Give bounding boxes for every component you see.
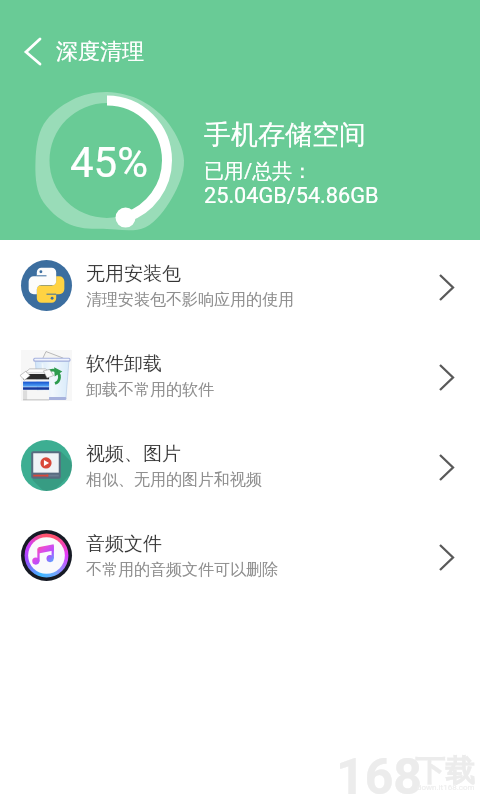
staticText: 相似、无用的图片和视频 [86,470,262,490]
staticText: 168 [336,748,423,800]
other: Open 软件卸载 [436,360,466,390]
staticText: 无用安装包 [86,262,181,286]
staticText: 卸载不常用的软件 [86,380,214,400]
staticText: 深度清理 [56,38,144,66]
other: Open 视频、图片 [436,450,466,480]
staticText: 视频、图片 [86,442,181,466]
staticText: 手机存储空间 [204,118,366,152]
staticText: down.it168.com [417,783,475,792]
staticText: 25.04GB/54.86GB [204,183,379,208]
staticText: 已用/总共： [204,159,313,184]
staticText: 音频文件 [86,532,162,556]
button[interactable]: 无用安装包 [0,240,480,330]
other: Open 无用安装包 [436,270,466,300]
button[interactable]: 软件卸载 [0,330,480,420]
button[interactable]: Back [13,31,54,72]
staticText: 清理安装包不影响应用的使用 [86,290,294,310]
other: Open 音频文件 [436,540,466,570]
staticText: 下载 [415,752,475,790]
button[interactable]: 音频文件 [0,510,480,600]
staticText: 不常用的音频文件可以删除 [86,560,278,580]
staticText: 软件卸载 [86,352,162,376]
staticText: 45% [70,138,148,187]
button[interactable]: 视频、图片 [0,420,480,510]
